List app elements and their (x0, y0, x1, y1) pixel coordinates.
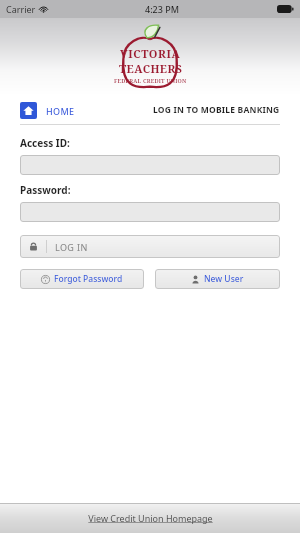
button[interactable] (20, 155, 280, 175)
staticText: 4:23 PM (145, 3, 179, 15)
button[interactable]: LOG IN (20, 235, 280, 258)
staticText: Access ID: (20, 136, 70, 150)
staticText: VICTORIA (120, 46, 181, 61)
other: Home (20, 102, 37, 119)
staticText: TEACHERS (119, 61, 183, 76)
staticText: Carrier (6, 3, 36, 15)
button[interactable]: View Credit Union Homepage (0, 503, 300, 533)
button[interactable]: Forgot Password (20, 269, 144, 289)
staticText: LOG IN (55, 241, 88, 253)
staticText: New User (204, 273, 244, 285)
staticText: FEDERAL CREDIT UNION (114, 77, 187, 84)
button[interactable] (20, 202, 280, 222)
button[interactable]: New User (155, 269, 280, 289)
staticText: Forgot Password (54, 273, 123, 285)
staticText: View Credit Union Homepage (88, 512, 213, 524)
staticText: Password: (20, 183, 71, 197)
staticText: LOG IN TO MOBILE BANKING (153, 104, 280, 116)
button[interactable]: Home (20, 102, 75, 119)
staticText: HOME (46, 105, 75, 117)
